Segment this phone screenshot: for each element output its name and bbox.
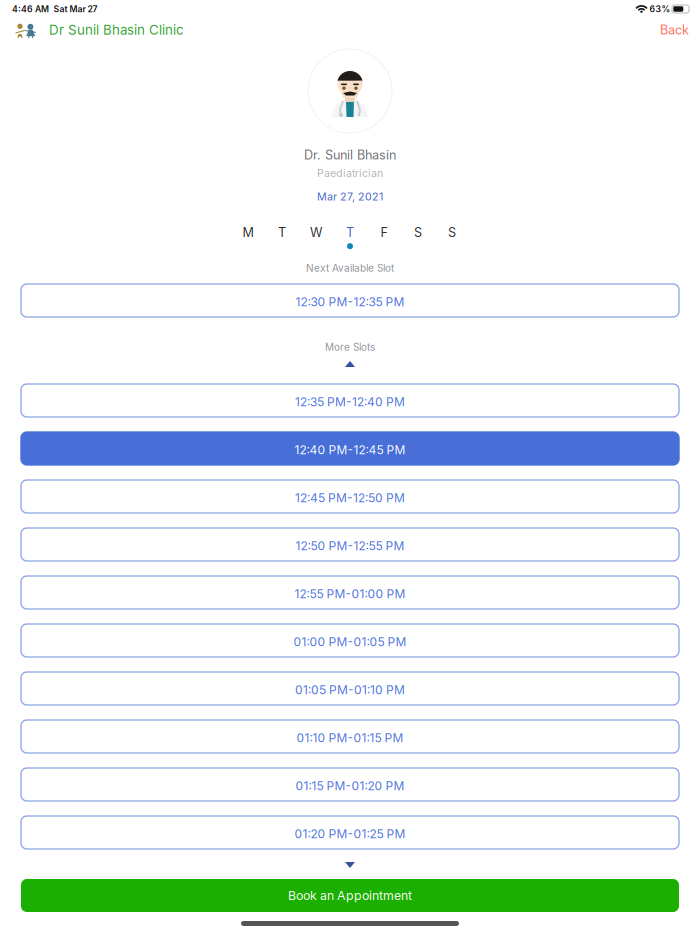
button[interactable]: T <box>333 224 367 250</box>
button[interactable]: 12:45 PM-12:50 PM <box>21 480 679 513</box>
staticText: 01:10 PM-01:15 PM <box>296 731 403 745</box>
staticText: 01:05 PM-01:10 PM <box>295 683 405 697</box>
button[interactable]: Back <box>660 22 689 38</box>
staticText: F <box>380 225 387 240</box>
staticText: Mar 27, 2021 <box>317 190 383 203</box>
staticText: 4:46 AM <box>12 4 49 14</box>
staticText: T <box>346 225 354 240</box>
staticText: 01:20 PM-01:25 PM <box>294 827 405 841</box>
staticText: Dr Sunil Bhasin Clinic <box>49 22 184 38</box>
staticText: 12:30 PM-12:35 PM <box>295 295 404 309</box>
button[interactable]: S <box>435 224 469 250</box>
button[interactable]: 12:30 PM-12:35 PM <box>21 284 679 317</box>
staticText: Sat Mar 27 <box>53 4 97 14</box>
button[interactable]: 01:10 PM-01:15 PM <box>21 720 679 753</box>
button[interactable]: 01:00 PM-01:05 PM <box>21 624 679 657</box>
staticText: M <box>242 225 253 240</box>
button[interactable]: 12:50 PM-12:55 PM <box>21 528 679 561</box>
staticText: 01:00 PM-01:05 PM <box>293 635 406 649</box>
staticText: 12:50 PM-12:55 PM <box>295 539 404 553</box>
button[interactable]: M <box>231 224 265 250</box>
button[interactable]: F <box>367 224 401 250</box>
staticText: 12:40 PM-12:45 PM <box>294 443 405 457</box>
staticText: 12:55 PM-01:00 PM <box>294 587 405 601</box>
staticText: 12:35 PM-12:40 PM <box>295 395 405 409</box>
staticText: Dr. Sunil Bhasin <box>304 147 396 163</box>
staticText: Paediatrician <box>317 166 383 179</box>
button[interactable]: T <box>265 224 299 250</box>
staticText: S <box>448 225 456 240</box>
button[interactable]: Show more slots <box>330 859 370 871</box>
staticText: Back <box>660 22 689 38</box>
button[interactable]: 12:35 PM-12:40 PM <box>21 384 679 417</box>
staticText: 12:45 PM-12:50 PM <box>295 491 405 505</box>
button[interactable]: S <box>401 224 435 250</box>
button[interactable]: Book an Appointment <box>21 879 679 912</box>
staticText: 01:15 PM-01:20 PM <box>295 779 404 793</box>
staticText: W <box>310 225 322 240</box>
button[interactable]: Show fewer slots <box>330 358 370 370</box>
staticText: 63% <box>649 4 670 14</box>
button[interactable]: 01:05 PM-01:10 PM <box>21 672 679 705</box>
button[interactable]: W <box>299 224 333 250</box>
staticText: S <box>414 225 422 240</box>
button[interactable]: 12:40 PM-12:45 PM <box>21 432 679 465</box>
staticText: More Slots <box>325 341 375 353</box>
button[interactable]: 12:55 PM-01:00 PM <box>21 576 679 609</box>
staticText: Next Available Slot <box>306 262 394 274</box>
staticText: T <box>278 225 286 240</box>
staticText: Book an Appointment <box>288 888 412 903</box>
button[interactable]: 01:15 PM-01:20 PM <box>21 768 679 801</box>
button[interactable]: 01:20 PM-01:25 PM <box>21 816 679 849</box>
